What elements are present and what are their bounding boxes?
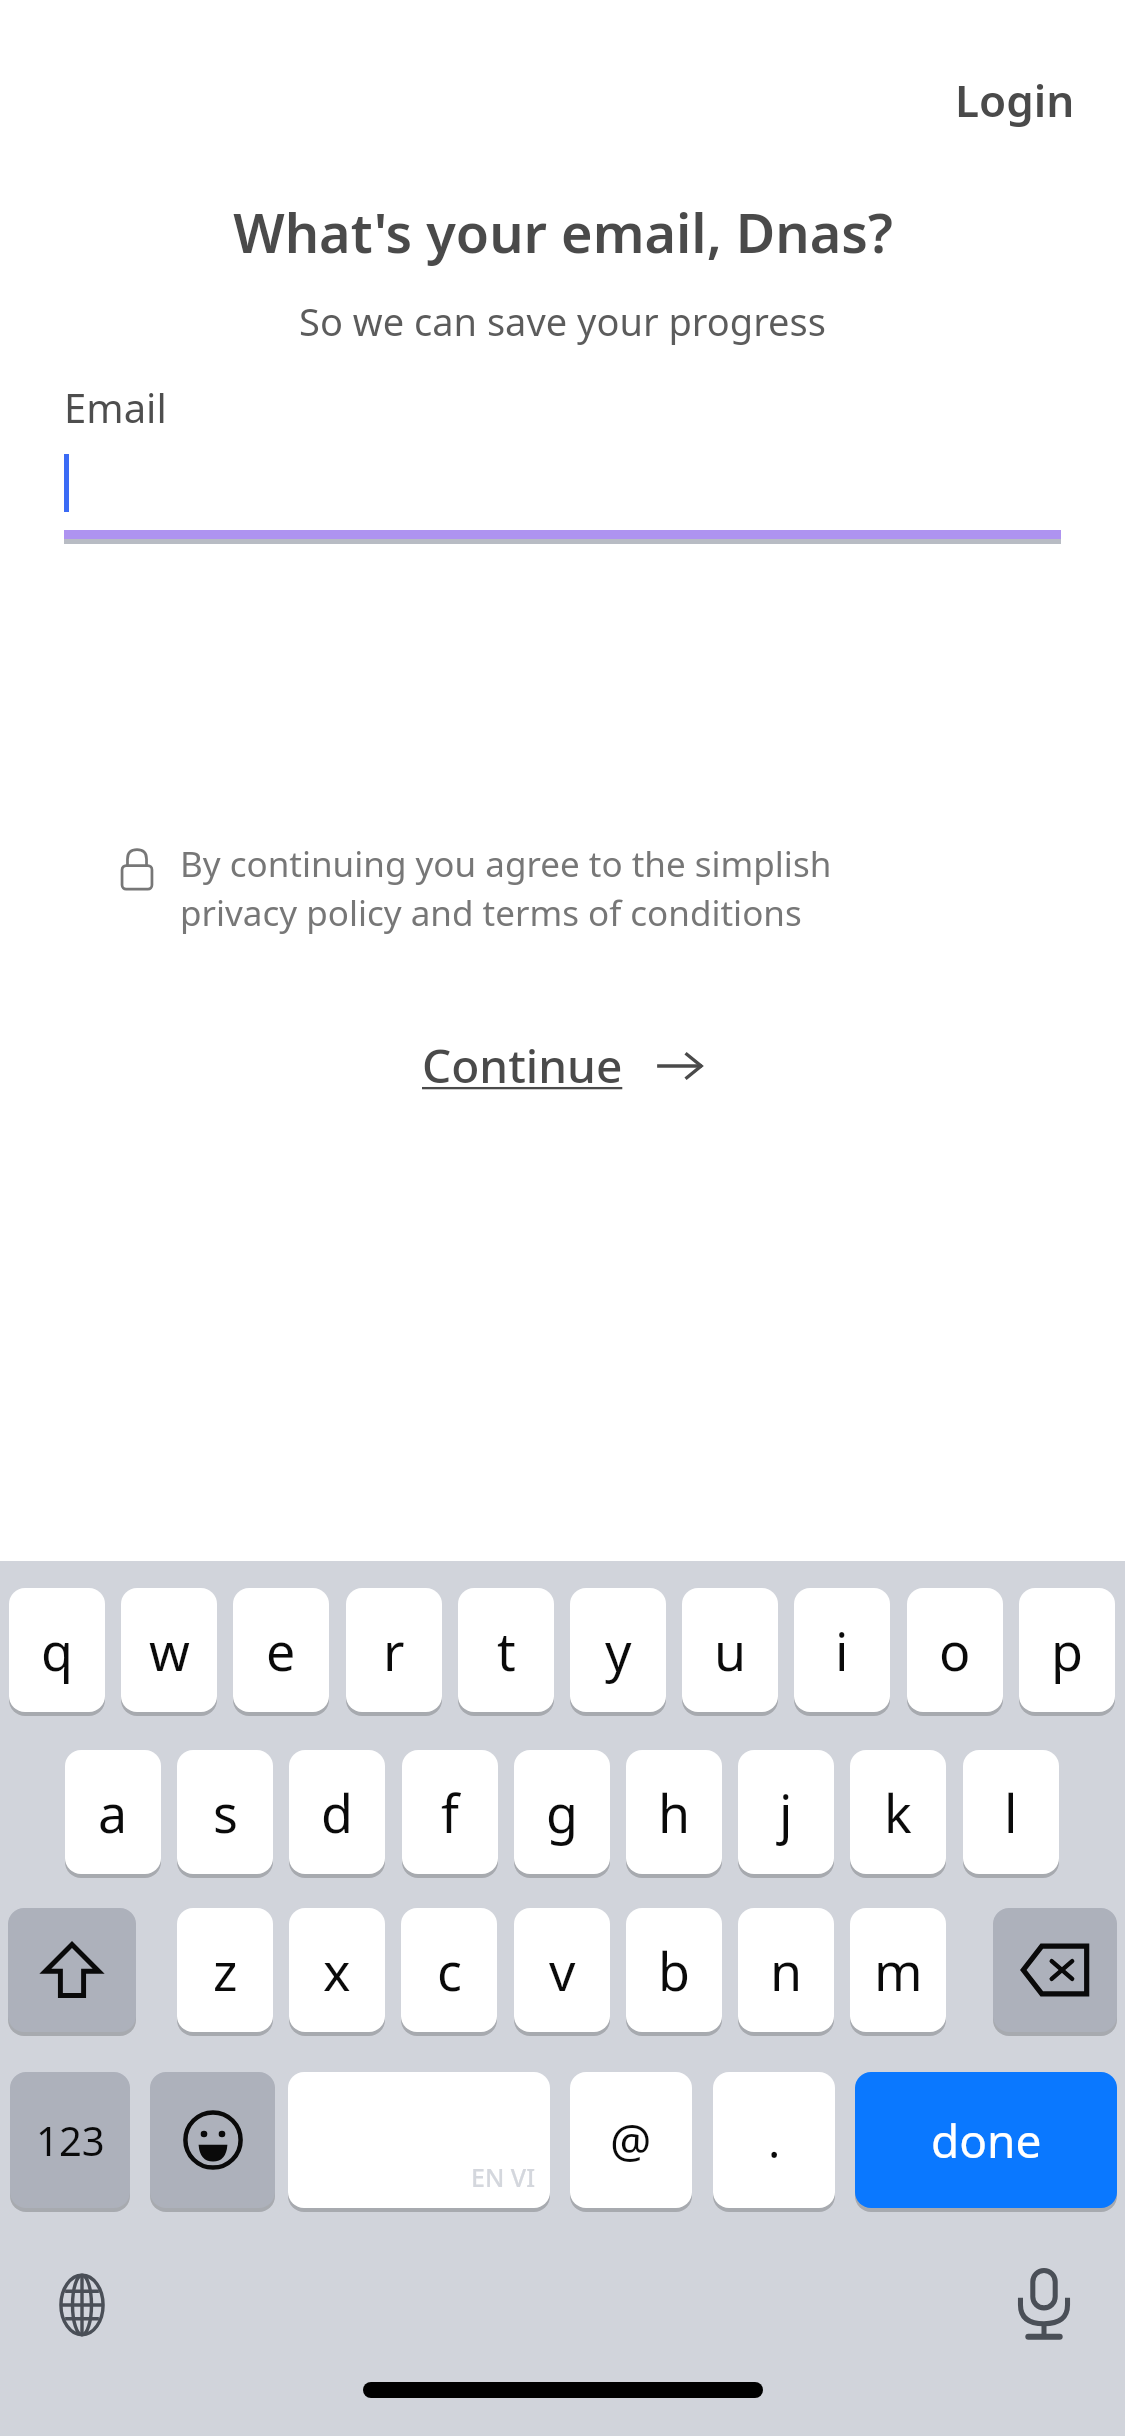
button[interactable]: l	[963, 1750, 1059, 1874]
button[interactable]: d	[289, 1750, 385, 1874]
staticText: m	[874, 1935, 923, 2006]
button[interactable]: @	[570, 2072, 692, 2208]
staticText: EN VI	[471, 2160, 536, 2194]
staticText: s	[213, 1777, 238, 1848]
staticText: z	[213, 1935, 238, 2006]
button[interactable]: u	[682, 1588, 778, 1712]
staticText: r	[383, 1615, 405, 1686]
staticText: By continuing you agree to the simplish …	[180, 840, 832, 937]
button[interactable]: Shift	[8, 1908, 136, 2032]
staticText: @	[610, 2109, 652, 2172]
staticText: c	[437, 1935, 462, 2006]
staticText: done	[931, 2109, 1042, 2172]
button[interactable]: 123	[10, 2072, 130, 2208]
staticText: p	[1051, 1615, 1083, 1686]
button[interactable]: .	[713, 2072, 835, 2208]
button[interactable]: Emoji	[150, 2072, 275, 2208]
staticText: v	[549, 1935, 576, 2006]
button[interactable]: Change language	[38, 2261, 126, 2349]
staticText: t	[497, 1615, 516, 1686]
button[interactable]: y	[570, 1588, 666, 1712]
button[interactable]: z	[177, 1908, 273, 2032]
staticText: .	[768, 2109, 781, 2172]
staticText: a	[98, 1777, 128, 1848]
button[interactable]: done	[855, 2072, 1117, 2208]
staticText: e	[266, 1615, 296, 1686]
button[interactable]: s	[177, 1750, 273, 1874]
staticText: h	[658, 1777, 691, 1848]
button[interactable]: w	[121, 1588, 217, 1712]
button[interactable]: Space	[288, 2072, 550, 2208]
button[interactable]: k	[850, 1750, 946, 1874]
staticText: 123	[36, 2113, 105, 2167]
button[interactable]: n	[738, 1908, 834, 2032]
button[interactable]: m	[850, 1908, 946, 2032]
staticText: d	[321, 1777, 353, 1848]
button[interactable]: r	[346, 1588, 442, 1712]
staticText: j	[779, 1777, 793, 1848]
button[interactable]: x	[289, 1908, 385, 2032]
staticText: k	[884, 1777, 912, 1848]
button[interactable]: g	[514, 1750, 610, 1874]
staticText: l	[1004, 1777, 1018, 1848]
button[interactable]	[64, 450, 1061, 516]
button[interactable]: Backspace	[993, 1908, 1117, 2032]
staticText: g	[546, 1777, 578, 1848]
staticText: n	[770, 1935, 803, 2006]
button[interactable]: p	[1019, 1588, 1115, 1712]
button[interactable]: v	[514, 1908, 610, 2032]
staticText: q	[41, 1615, 73, 1686]
button[interactable]: f	[402, 1750, 498, 1874]
button[interactable]: e	[233, 1588, 329, 1712]
button[interactable]: q	[9, 1588, 105, 1712]
staticText: o	[939, 1615, 971, 1686]
staticText: u	[714, 1615, 747, 1686]
button[interactable]: i	[794, 1588, 890, 1712]
staticText: x	[323, 1935, 351, 2006]
button[interactable]: t	[458, 1588, 554, 1712]
button[interactable]: h	[626, 1750, 722, 1874]
button[interactable]: j	[738, 1750, 834, 1874]
button[interactable]: b	[626, 1908, 722, 2032]
button[interactable]: c	[401, 1908, 497, 2032]
button[interactable]: Login	[945, 62, 1085, 138]
staticText: Login	[955, 70, 1075, 130]
staticText: Email	[64, 380, 167, 434]
staticText: Continue	[422, 1034, 623, 1097]
staticText: So we can save your progress	[299, 295, 826, 347]
staticText: b	[658, 1935, 690, 2006]
button[interactable]: Voice input	[1000, 2261, 1088, 2349]
staticText: What's your email, Dnas?	[233, 195, 893, 269]
button[interactable]: o	[907, 1588, 1003, 1712]
staticText: f	[441, 1777, 459, 1848]
staticText: w	[149, 1615, 190, 1686]
button[interactable]: Continue	[404, 1020, 721, 1111]
staticText: y	[605, 1615, 632, 1686]
staticText: i	[835, 1615, 849, 1686]
button[interactable]: a	[65, 1750, 161, 1874]
